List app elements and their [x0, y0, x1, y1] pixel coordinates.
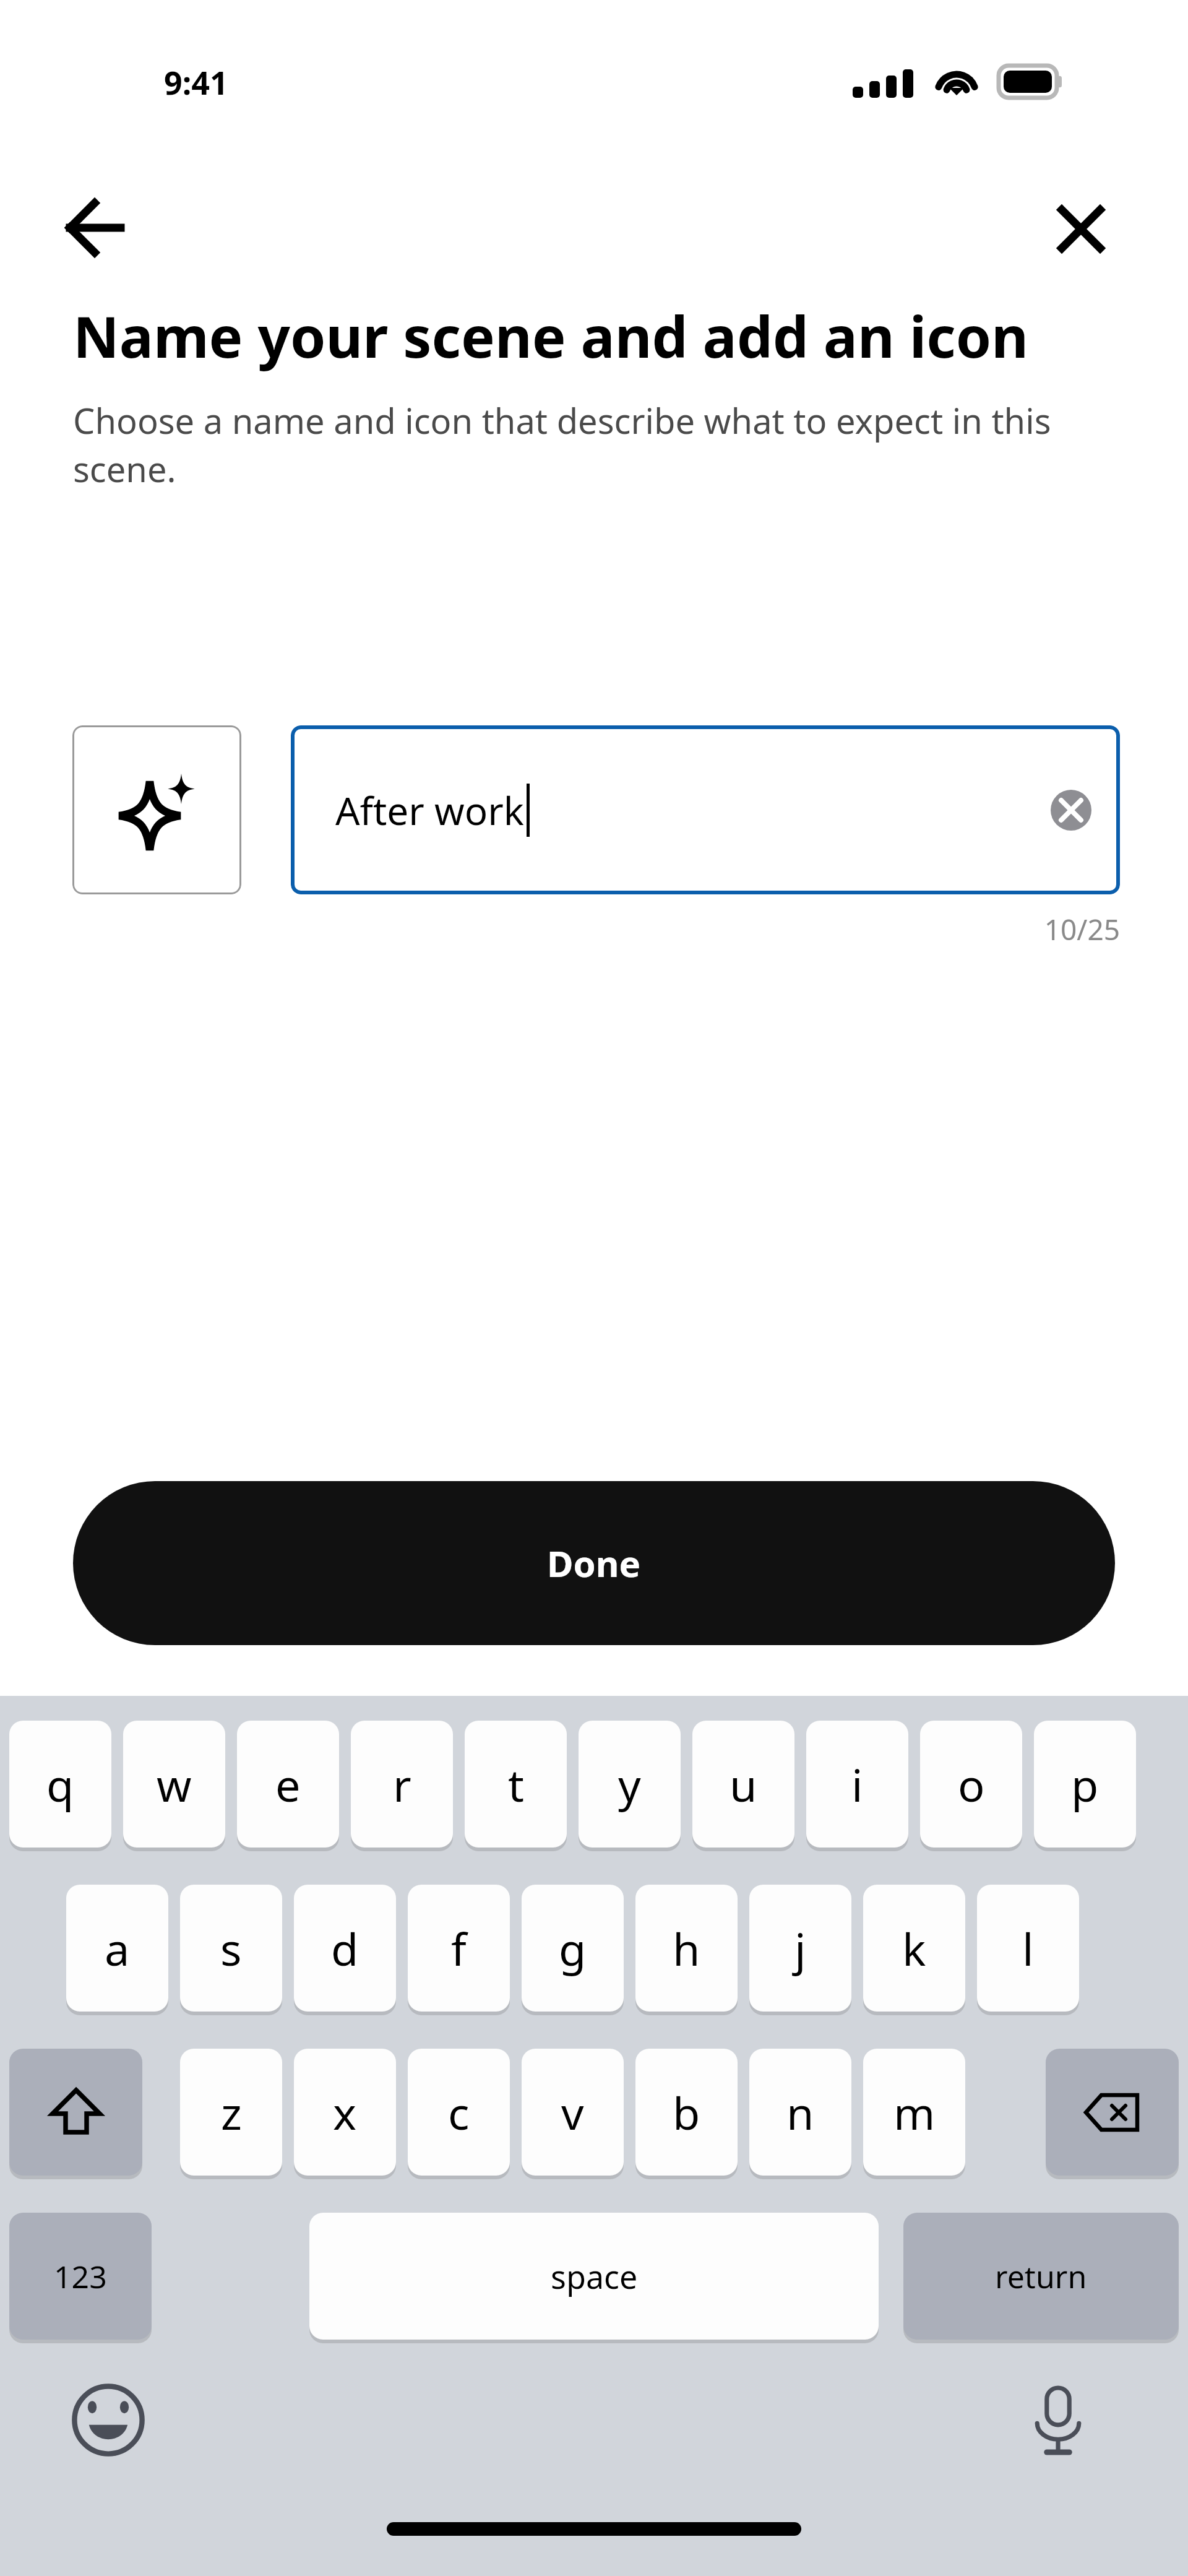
staticText: f	[451, 1918, 467, 1979]
staticText: a	[105, 1918, 130, 1979]
button[interactable]: q	[9, 1721, 111, 1848]
button[interactable]: Backspace	[1046, 2049, 1179, 2176]
button[interactable]: space	[309, 2213, 879, 2340]
staticText: space	[551, 2254, 638, 2298]
staticText: Done	[547, 1539, 641, 1588]
button[interactable]: v	[522, 2049, 624, 2176]
staticText: e	[275, 1754, 301, 1815]
staticText: w	[157, 1754, 192, 1815]
button[interactable]: g	[522, 1885, 624, 2012]
staticText: x	[333, 2082, 357, 2143]
button[interactable]: m	[863, 2049, 965, 2176]
staticText: g	[559, 1918, 587, 1979]
staticText: 123	[54, 2255, 107, 2297]
staticText: m	[893, 2082, 936, 2143]
button[interactable]: Emoji keyboard	[68, 2380, 148, 2460]
button[interactable]: e	[237, 1721, 339, 1848]
button[interactable]: i	[806, 1721, 908, 1848]
button[interactable]: p	[1034, 1721, 1136, 1848]
button[interactable]: c	[408, 2049, 510, 2176]
button[interactable]: Choose icon	[72, 725, 241, 894]
button[interactable]: y	[579, 1721, 681, 1848]
button[interactable]: k	[863, 1885, 965, 2012]
button[interactable]: t	[465, 1721, 567, 1848]
staticText: d	[331, 1918, 359, 1979]
button[interactable]: s	[180, 1885, 282, 2012]
button[interactable]: return	[903, 2213, 1179, 2340]
button[interactable]: o	[920, 1721, 1022, 1848]
button[interactable]: r	[351, 1721, 453, 1848]
staticText: After work	[335, 784, 524, 836]
button[interactable]: d	[294, 1885, 396, 2012]
staticText: k	[902, 1918, 926, 1979]
staticText: t	[508, 1754, 524, 1815]
staticText: n	[786, 2082, 814, 2143]
button[interactable]: Clear text	[1049, 789, 1093, 832]
staticText: i	[851, 1754, 863, 1815]
button[interactable]: x	[294, 2049, 396, 2176]
staticText: o	[958, 1754, 985, 1815]
button[interactable]: w	[123, 1721, 225, 1848]
staticText: Name your scene and add an icon	[73, 297, 1028, 374]
button[interactable]: z	[180, 2049, 282, 2176]
staticText: 10/25	[841, 910, 1120, 949]
staticText: b	[673, 2082, 700, 2143]
button[interactable]: f	[408, 1885, 510, 2012]
button[interactable]: Done	[73, 1481, 1115, 1645]
button[interactable]: Close	[1044, 192, 1118, 266]
staticText: c	[448, 2082, 470, 2143]
button[interactable]: u	[692, 1721, 794, 1848]
button[interactable]: h	[635, 1885, 738, 2012]
button[interactable]: n	[749, 2049, 851, 2176]
staticText: y	[618, 1754, 641, 1815]
button[interactable]: Shift	[9, 2049, 142, 2176]
staticText: Choose a name and icon that describe wha…	[73, 397, 1119, 493]
staticText: v	[561, 2082, 584, 2143]
button[interactable]: j	[749, 1885, 851, 2012]
button[interactable]: l	[977, 1885, 1079, 2012]
staticText: return	[995, 2255, 1087, 2297]
staticText: u	[730, 1754, 757, 1815]
staticText: p	[1071, 1754, 1099, 1815]
button[interactable]: Dictation	[1018, 2380, 1098, 2460]
staticText: s	[220, 1918, 242, 1979]
button[interactable]: a	[66, 1885, 168, 2012]
staticText: l	[1022, 1918, 1034, 1979]
staticText: q	[46, 1754, 74, 1815]
staticText: z	[221, 2082, 242, 2143]
button[interactable]: Back	[57, 191, 131, 265]
staticText: r	[393, 1754, 411, 1815]
button[interactable]: After work	[291, 725, 1120, 894]
button[interactable]: b	[635, 2049, 738, 2176]
staticText: j	[794, 1918, 806, 1979]
staticText: h	[673, 1918, 700, 1979]
button[interactable]: 123	[9, 2213, 152, 2340]
staticText: 9:41	[164, 60, 228, 104]
